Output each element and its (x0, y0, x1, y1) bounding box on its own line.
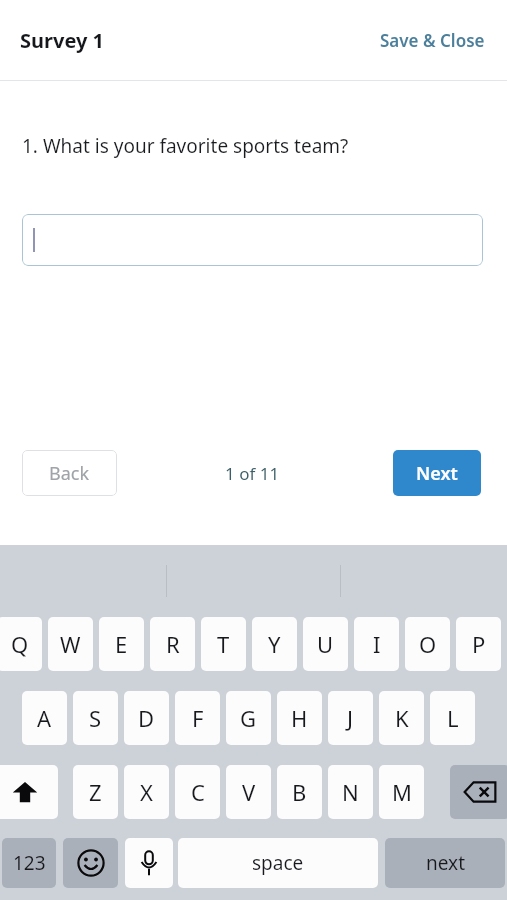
staticText: S (89, 703, 102, 733)
button[interactable]: Next (393, 450, 481, 496)
staticText: Y (268, 629, 281, 659)
button[interactable]: next (385, 838, 505, 888)
staticText: 1. What is your favorite sports team? (22, 133, 349, 159)
button[interactable]: T (201, 617, 246, 671)
staticText: K (395, 703, 409, 733)
button[interactable]: E (99, 617, 144, 671)
staticText: next (426, 850, 465, 876)
button[interactable]: Shift (0, 765, 58, 819)
button[interactable]: Emoji (63, 838, 118, 888)
staticText: A (37, 703, 52, 733)
button[interactable]: O (405, 617, 450, 671)
staticText: Z (89, 777, 102, 807)
staticText: 123 (13, 850, 46, 876)
staticText: J (347, 703, 354, 733)
staticText: H (291, 703, 308, 733)
button[interactable]: Survey 1 (20, 27, 104, 54)
staticText: B (292, 777, 307, 807)
staticText: P (472, 629, 486, 659)
button[interactable]: Save & Close (380, 29, 485, 52)
staticText: 1 of 11 (225, 462, 280, 485)
button[interactable]: Back (22, 450, 117, 496)
staticText: Back (49, 461, 90, 486)
staticText: C (191, 777, 205, 807)
staticText: V (242, 777, 256, 807)
button[interactable]: K (379, 691, 424, 745)
staticText: I (373, 629, 381, 659)
staticText: G (240, 703, 257, 733)
button[interactable]: Q (0, 617, 42, 671)
button[interactable]: R (150, 617, 195, 671)
button[interactable] (22, 214, 483, 266)
button[interactable]: M (379, 765, 424, 819)
staticText: space (252, 850, 304, 876)
staticText: U (317, 629, 334, 659)
staticText: R (166, 629, 180, 659)
button[interactable]: G (226, 691, 271, 745)
button[interactable]: Backspace (450, 765, 507, 819)
staticText: X (140, 777, 153, 807)
staticText: D (138, 703, 155, 733)
button[interactable]: Y (252, 617, 297, 671)
button[interactable]: D (124, 691, 169, 745)
button[interactable]: W (48, 617, 93, 671)
staticText: N (342, 777, 359, 807)
button[interactable]: C (175, 765, 220, 819)
button[interactable]: J (328, 691, 373, 745)
staticText: L (447, 703, 459, 733)
button[interactable]: Z (73, 765, 118, 819)
staticText: Next (416, 461, 458, 486)
button[interactable]: I (354, 617, 399, 671)
staticText: F (192, 703, 204, 733)
staticText: O (419, 629, 437, 659)
button[interactable]: V (226, 765, 271, 819)
staticText: T (217, 629, 230, 659)
staticText: E (115, 629, 128, 659)
button[interactable]: N (328, 765, 373, 819)
staticText: Q (11, 629, 29, 659)
staticText: W (60, 629, 81, 659)
button[interactable]: H (277, 691, 322, 745)
staticText: M (392, 777, 412, 807)
button[interactable]: space (178, 838, 378, 888)
button[interactable]: A (22, 691, 67, 745)
button[interactable]: P (456, 617, 501, 671)
button[interactable]: U (303, 617, 348, 671)
button[interactable]: B (277, 765, 322, 819)
button[interactable]: F (175, 691, 220, 745)
button[interactable]: 123 (2, 838, 56, 888)
button[interactable]: Voice input (125, 838, 173, 888)
button[interactable]: S (73, 691, 118, 745)
button[interactable]: L (430, 691, 475, 745)
button[interactable]: X (124, 765, 169, 819)
